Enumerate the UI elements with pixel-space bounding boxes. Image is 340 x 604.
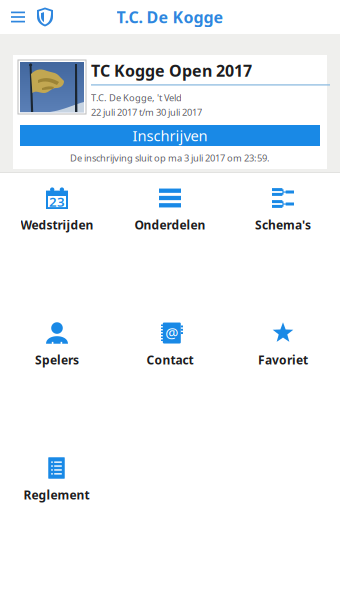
staticText: Onderdelen (134, 217, 205, 233)
button[interactable]: Schema's (226, 187, 339, 233)
button[interactable]: Club (31, 0, 59, 34)
staticText: T.C. De Kogge (116, 6, 223, 28)
staticText: Contact (146, 352, 193, 368)
staticText: T.C. De Kogge, 't Veld (91, 91, 182, 104)
staticText: Favoriet (258, 352, 308, 368)
staticText: De inschrijving sluit op ma 3 juli 2017 … (70, 152, 270, 164)
staticText: Spelers (35, 352, 79, 368)
staticText: Reglement (23, 487, 89, 503)
button[interactable]: Onderdelen (113, 187, 226, 233)
button[interactable]: Inschrijven (20, 125, 320, 146)
staticText: Wedstrijden (20, 217, 93, 233)
button[interactable]: 23 (0, 187, 113, 233)
staticText: 23 (49, 193, 65, 210)
button[interactable]: @ (113, 322, 226, 368)
staticText: Inschrijven (132, 126, 207, 145)
staticText: TC Kogge Open 2017 (91, 60, 252, 81)
button[interactable]: Reglement (0, 457, 113, 503)
staticText: @ (165, 323, 178, 342)
staticText: Schema's (255, 217, 311, 233)
staticText: 22 juli 2017 t/m 30 juli 2017 (91, 106, 202, 118)
button[interactable]: Menu (5, 0, 31, 34)
button[interactable]: Spelers (0, 322, 113, 368)
button[interactable]: Favoriet (226, 322, 339, 368)
